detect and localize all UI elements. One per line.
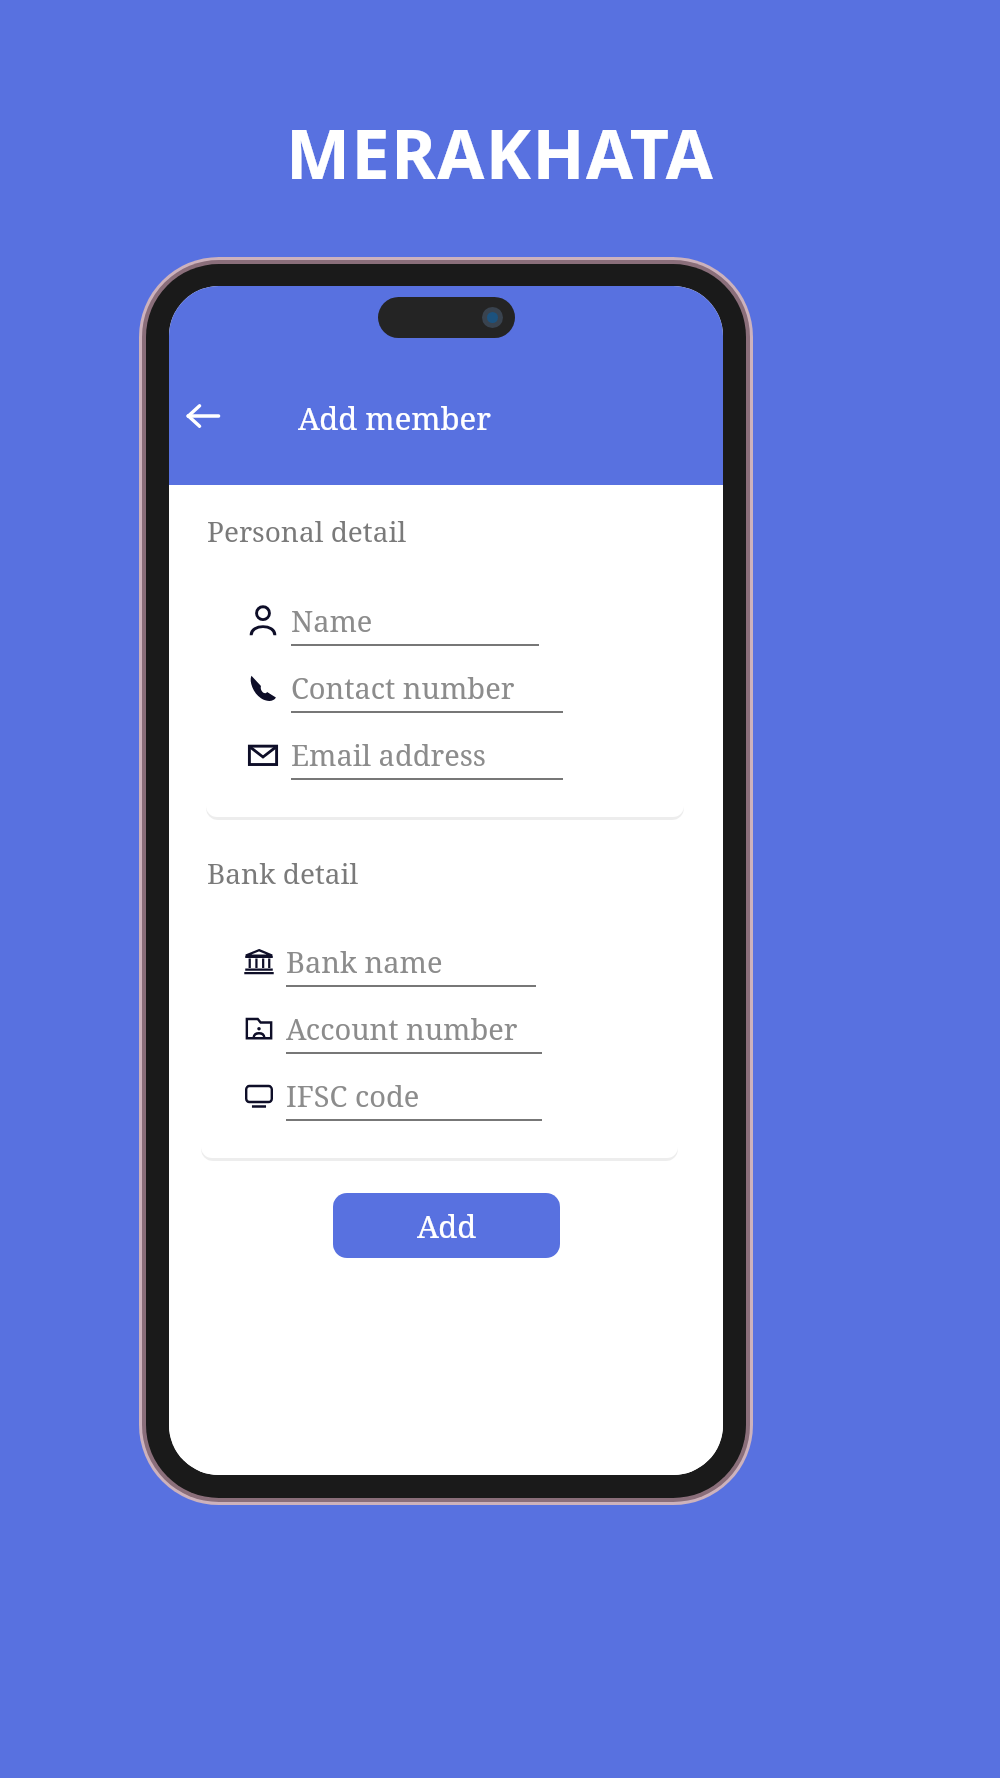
button[interactable]: Back xyxy=(173,386,233,446)
button[interactable]: Email address xyxy=(206,724,684,791)
staticText: MERAKHATA xyxy=(286,106,715,199)
staticText: Contact number xyxy=(291,668,515,707)
staticText: Email address xyxy=(291,735,486,774)
staticText: Add xyxy=(417,1205,477,1247)
staticText: Account number xyxy=(286,1009,518,1048)
button[interactable]: Name xyxy=(206,590,684,657)
staticText: Add member xyxy=(298,397,491,439)
staticText: Bank name xyxy=(286,942,443,981)
staticText: Personal detail xyxy=(207,512,407,550)
button[interactable]: IFSC code xyxy=(201,1065,678,1132)
staticText: Name xyxy=(291,601,373,640)
button[interactable]: Contact number xyxy=(206,657,684,724)
staticText: IFSC code xyxy=(286,1076,420,1115)
button[interactable]: Add xyxy=(333,1193,560,1258)
button[interactable]: Account number xyxy=(201,998,678,1065)
staticText: Bank detail xyxy=(207,854,359,892)
button[interactable]: Bank name xyxy=(201,931,678,998)
